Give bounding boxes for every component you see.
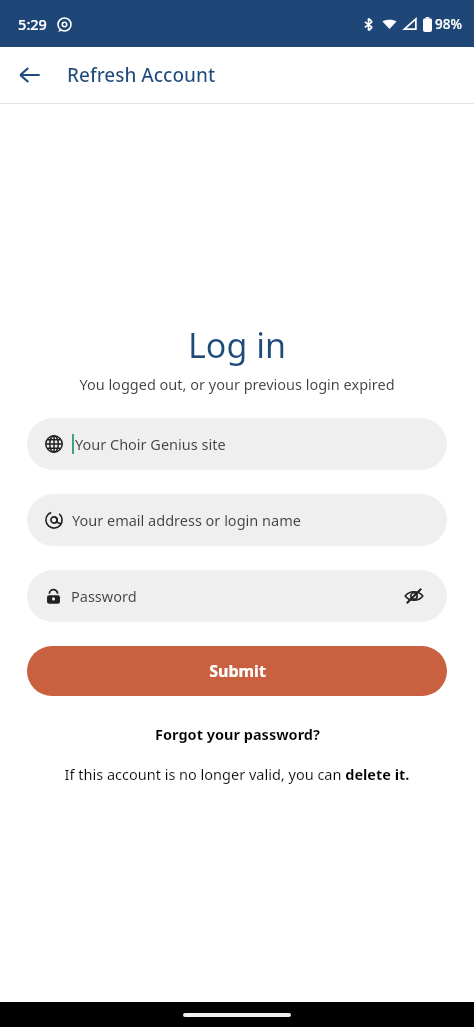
staticText: You logged out, or your previous login e… (79, 374, 395, 394)
staticText: Refresh Account (67, 62, 216, 88)
button[interactable]: Back (10, 55, 50, 95)
button[interactable]: Forgot your password? (149, 722, 326, 746)
staticText: Submit (209, 660, 266, 682)
staticText: If this account is no longer valid, you … (56, 764, 418, 784)
button[interactable]: Show password (399, 581, 429, 611)
button[interactable]: If this account is no longer valid, you … (56, 764, 418, 784)
staticText: Your Choir Genius site (75, 434, 429, 454)
button[interactable]: Your email address or login name (27, 494, 447, 546)
staticText: Your email address or login name (72, 510, 429, 530)
staticText: 5:29 (18, 14, 47, 34)
button[interactable]: Password (27, 570, 447, 622)
button[interactable]: Your Choir Genius site (27, 418, 447, 470)
staticText: Password (71, 586, 399, 606)
staticText: 98% (435, 15, 462, 33)
staticText: Log in (188, 322, 286, 368)
staticText: Forgot your password? (155, 724, 320, 744)
button[interactable]: Submit (27, 646, 447, 696)
